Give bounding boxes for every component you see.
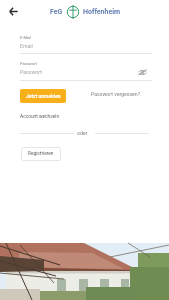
- button[interactable]: Back: [4, 2, 22, 20]
- staticText: E-Mail: [20, 35, 31, 40]
- staticText: oder: [77, 130, 88, 136]
- button[interactable]: Show password: [134, 64, 150, 80]
- staticText: Passwort: [20, 61, 37, 66]
- staticText: Passwort vergessen?: [91, 91, 141, 97]
- staticText: Jetzt anmelden: [26, 93, 61, 99]
- staticText: Account wechseln: [20, 114, 60, 120]
- staticText: Email: [20, 43, 33, 49]
- staticText: Hoffenheim: [83, 8, 121, 16]
- staticText: FeG: [50, 8, 63, 16]
- button[interactable]: Passwort vergessen?: [91, 91, 141, 97]
- button[interactable]: Jetzt anmelden: [20, 89, 66, 103]
- staticText: Passwort: [20, 69, 42, 75]
- button[interactable]: Registrieren: [21, 147, 61, 161]
- button[interactable]: Account wechseln: [20, 114, 60, 120]
- staticText: Registrieren: [28, 151, 54, 157]
